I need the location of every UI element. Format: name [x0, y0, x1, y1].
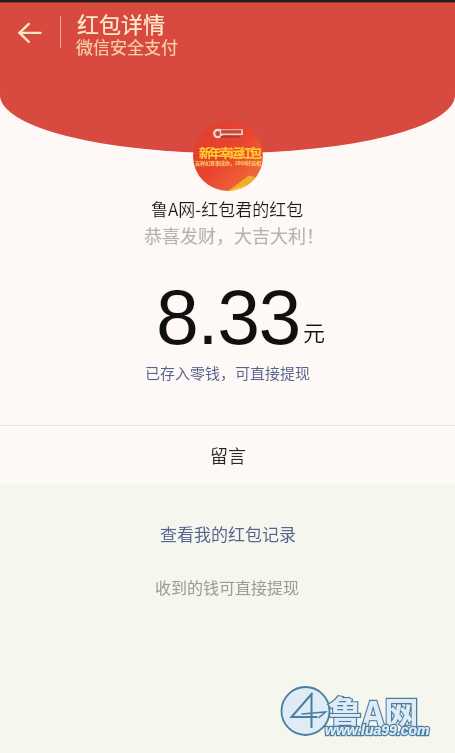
staticText: 微信安全支付	[76, 34, 178, 59]
staticText: 已存入零钱，可直接提现	[145, 362, 311, 384]
staticText: 元	[303, 315, 326, 347]
staticText: 8.33	[156, 274, 300, 360]
staticText: 查看我的红包记录	[160, 521, 296, 546]
button[interactable]: Back	[0, 6, 56, 58]
staticText: 鲁A网	[328, 686, 419, 737]
button[interactable]: 查看我的红包记录	[150, 517, 306, 550]
staticText: www.lua99.com	[325, 722, 430, 738]
button[interactable]: 留言	[0, 426, 455, 484]
staticText: 恭喜发财，大吉大利！	[144, 222, 324, 248]
staticText: 鲁A网	[328, 686, 419, 737]
staticText: 吉祥如意事成你，2018好运相伴	[195, 159, 263, 166]
staticText: 留言	[210, 442, 246, 468]
staticText: 收到的钱可直接提现	[155, 575, 300, 598]
staticText: 新年幸运红包	[199, 143, 260, 161]
staticText: www.lua99.com	[325, 722, 430, 738]
staticText: 红包详情	[77, 7, 166, 39]
staticText: 鲁A网-红包君的红包	[151, 196, 304, 221]
